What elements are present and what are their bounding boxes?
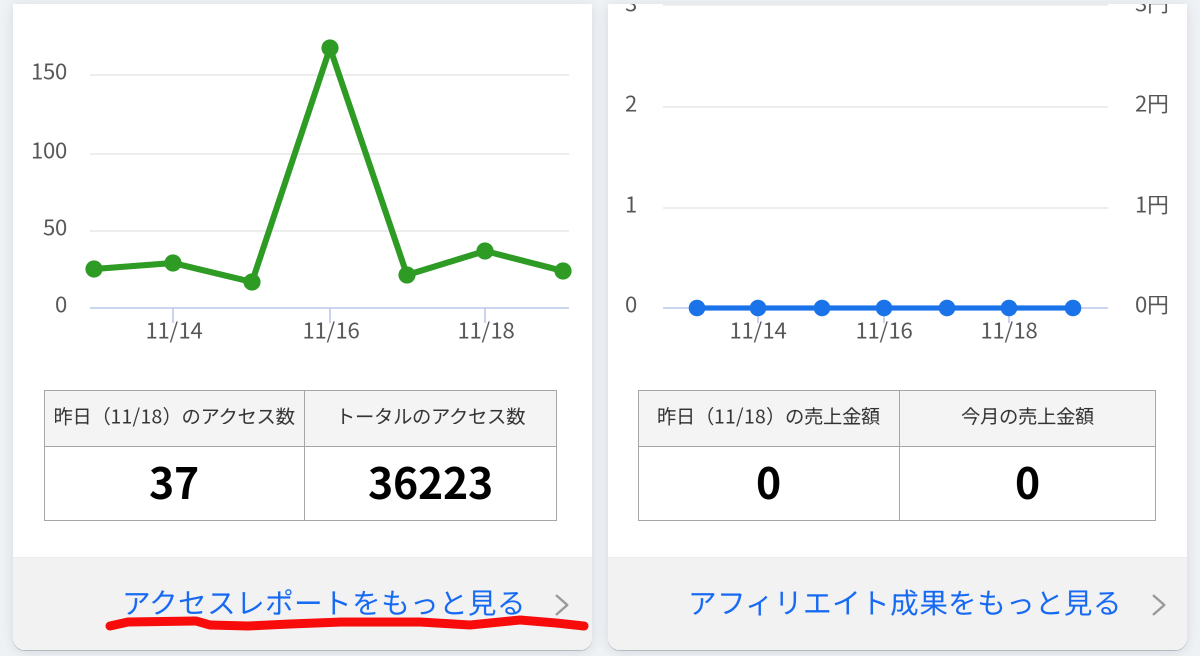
staticText: 0円 bbox=[1135, 287, 1169, 319]
staticText: 今月の売上金額 bbox=[961, 401, 1094, 429]
staticText: 1 bbox=[625, 187, 637, 219]
staticText: 11/16 bbox=[855, 313, 912, 345]
button[interactable]: アフィリエイト成果をもっと見る bbox=[608, 557, 1187, 650]
staticText: 昨日（11/18）の売上金額 bbox=[657, 401, 880, 429]
staticText: 0 bbox=[55, 287, 67, 319]
staticText: トータルのアクセス数 bbox=[336, 401, 525, 429]
staticText: 2 bbox=[625, 86, 637, 118]
staticText: 37 bbox=[149, 450, 199, 511]
staticText: 1円 bbox=[1135, 187, 1169, 219]
staticText: 150 bbox=[31, 54, 67, 86]
staticText: 3円 bbox=[1135, 0, 1169, 18]
staticText: 50 bbox=[43, 210, 67, 242]
staticText: 100 bbox=[31, 133, 67, 165]
staticText: 11/14 bbox=[729, 313, 786, 345]
staticText: 0 bbox=[756, 450, 781, 511]
staticText: 3 bbox=[625, 0, 637, 18]
staticText: 11/18 bbox=[980, 313, 1037, 345]
staticText: 36223 bbox=[368, 450, 493, 511]
staticText: 0 bbox=[1015, 450, 1040, 511]
staticText: 0 bbox=[625, 287, 637, 319]
staticText: 11/14 bbox=[145, 313, 202, 345]
staticText: 2円 bbox=[1135, 86, 1169, 118]
staticText: 11/16 bbox=[302, 313, 359, 345]
staticText: アクセスレポートをもっと見る bbox=[122, 580, 526, 622]
staticText: 昨日（11/18）のアクセス数 bbox=[53, 401, 294, 429]
staticText: 11/18 bbox=[457, 313, 514, 345]
staticText: アフィリエイト成果をもっと見る bbox=[688, 580, 1122, 622]
button[interactable]: アクセスレポートをもっと見る bbox=[13, 557, 592, 650]
